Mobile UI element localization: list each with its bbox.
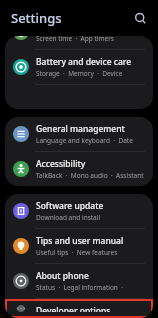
staticText: General management <box>36 123 125 135</box>
staticText: About phone <box>36 270 89 282</box>
staticText: Useful tips · New features <box>36 248 118 257</box>
button[interactable]: About phone <box>5 264 153 298</box>
button[interactable]: Digital Wellbeing <box>5 36 153 49</box>
button[interactable]: Tips and user manual <box>5 229 153 263</box>
staticText: Battery and device care <box>36 56 132 68</box>
button[interactable]: Accessibility <box>5 152 153 186</box>
staticText: Language and keyboard · Date and time <box>36 136 145 145</box>
button[interactable]: Developer options <box>5 299 153 318</box>
staticText: Settings <box>11 9 62 27</box>
staticText: Download and install <box>36 213 101 222</box>
staticText: TalkBack · Mono audio · Assistant menu <box>36 171 145 180</box>
staticText: Accessibility <box>36 158 86 170</box>
button[interactable]: Software update <box>5 194 153 228</box>
staticText: Tips and user manual <box>36 235 124 247</box>
staticText: Developer options <box>36 305 111 312</box>
staticText: Screen time · App timers <box>36 36 114 43</box>
button[interactable]: General management <box>5 117 153 151</box>
button[interactable]: Battery and device care <box>5 50 153 84</box>
button[interactable]: Search <box>128 6 152 30</box>
staticText: Status · Legal information · Phone name <box>36 283 145 292</box>
staticText: Storage · Memory · Device protection <box>36 69 145 78</box>
staticText: Software update <box>36 200 104 212</box>
